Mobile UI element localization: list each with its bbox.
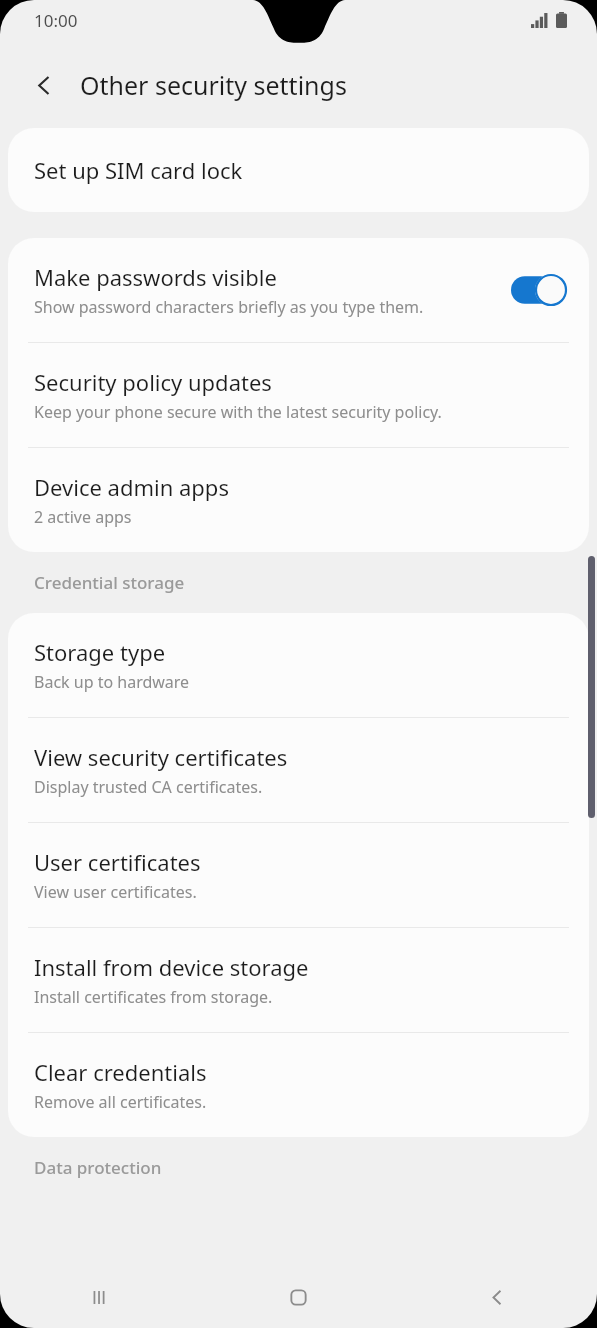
button[interactable]: Make passwords visible — [8, 238, 589, 342]
button[interactable]: Home — [199, 1266, 398, 1328]
button[interactable]: Device admin apps — [8, 448, 589, 552]
button[interactable]: User certificates — [8, 823, 589, 927]
staticText: Device admin apps — [34, 472, 229, 502]
staticText: Show password characters briefly as you … — [34, 296, 424, 318]
staticText: Data protection — [34, 1156, 162, 1179]
staticText: Install certificates from storage. — [34, 986, 273, 1008]
button[interactable]: Clear credentials — [8, 1033, 589, 1137]
staticText: Keep your phone secure with the latest s… — [34, 401, 442, 423]
staticText: User certificates — [34, 847, 201, 877]
staticText: Make passwords visible — [34, 262, 277, 292]
staticText: View user certificates. — [34, 881, 197, 903]
staticText: 2 active apps — [34, 506, 132, 528]
staticText: Other security settings — [80, 68, 347, 102]
staticText: Back up to hardware — [34, 671, 190, 693]
staticText: Clear credentials — [34, 1057, 207, 1087]
staticText: View security certificates — [34, 742, 288, 772]
staticText: Remove all certificates. — [34, 1091, 207, 1113]
button[interactable]: Storage type — [8, 613, 589, 717]
button[interactable]: Install from device storage — [8, 928, 589, 1032]
button[interactable]: Back — [20, 61, 68, 109]
button[interactable]: Back — [398, 1266, 597, 1328]
staticText: Set up SIM card lock — [34, 155, 243, 185]
button[interactable]: Set up SIM card lock — [8, 128, 589, 212]
staticText: Credential storage — [34, 571, 185, 594]
staticText: Display trusted CA certificates. — [34, 776, 263, 798]
staticText: Install from device storage — [34, 952, 309, 982]
button[interactable]: Recent apps — [0, 1266, 199, 1328]
button[interactable]: Security policy updates — [8, 343, 589, 447]
staticText: 10:00 — [34, 9, 78, 32]
button[interactable]: View security certificates — [8, 718, 589, 822]
staticText: Security policy updates — [34, 367, 272, 397]
staticText: Storage type — [34, 637, 166, 667]
